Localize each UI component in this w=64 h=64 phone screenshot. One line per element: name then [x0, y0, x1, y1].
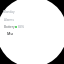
- staticText: Battery: [4, 25, 15, 29]
- button[interactable]: Alarms: [4, 18, 14, 22]
- staticText: Alarms: [4, 18, 14, 22]
- button[interactable]: Monday: [3, 10, 15, 14]
- button[interactable]: Battery: [4, 25, 25, 29]
- button[interactable]: Mu: [7, 31, 13, 36]
- staticText: 84%: [18, 25, 25, 29]
- staticText: Mu: [7, 31, 13, 36]
- staticText: Monday: [3, 10, 15, 14]
